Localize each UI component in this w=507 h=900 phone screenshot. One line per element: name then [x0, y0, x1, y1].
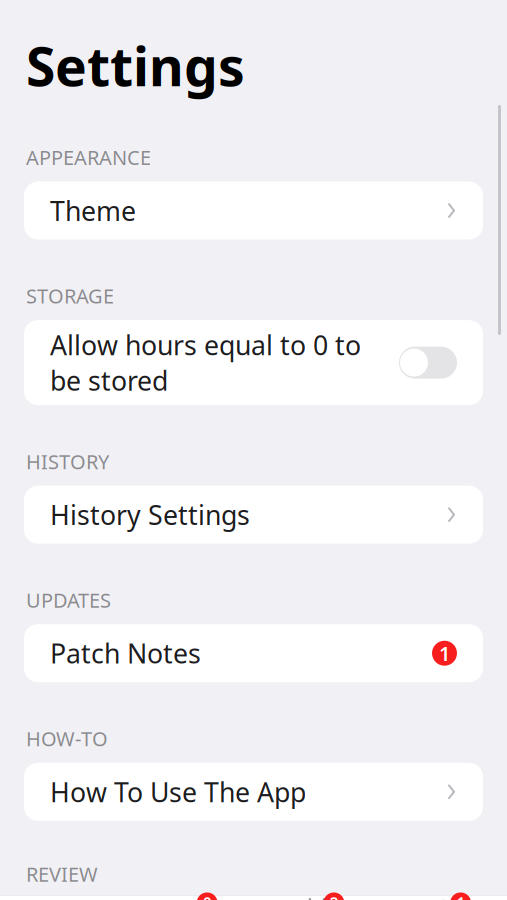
staticText: HOW-TO [26, 725, 108, 752]
staticText: History Settings [50, 497, 250, 532]
staticText: REVIEW [26, 861, 98, 887]
button[interactable]: Allow hours equal to 0 to be stored [0, 320, 507, 405]
staticText: Allow hours equal to 0 to be stored [50, 327, 361, 398]
button[interactable]: Home [0, 892, 127, 900]
staticText: HISTORY [26, 448, 109, 475]
button[interactable]: 0 [127, 892, 254, 900]
staticText: Theme [50, 193, 136, 228]
button[interactable]: Patch Notes [0, 624, 507, 682]
staticText: Settings [26, 30, 245, 101]
staticText: STORAGE [26, 282, 114, 309]
staticText: UPDATES [26, 587, 111, 613]
button[interactable]: How To Use The App [0, 763, 507, 821]
staticText: Patch Notes [50, 635, 201, 671]
staticText: 1 [439, 640, 450, 666]
button[interactable]: 1 [380, 892, 507, 900]
staticText: 1 [456, 892, 465, 900]
staticText: 0 [203, 892, 212, 900]
staticText: 2 [329, 892, 338, 900]
button[interactable]: Theme [0, 181, 507, 239]
staticText: How To Use The App [50, 774, 306, 809]
staticText: APPEARANCE [26, 144, 151, 171]
button[interactable]: 2 [253, 892, 380, 900]
button[interactable]: History Settings [0, 486, 507, 544]
